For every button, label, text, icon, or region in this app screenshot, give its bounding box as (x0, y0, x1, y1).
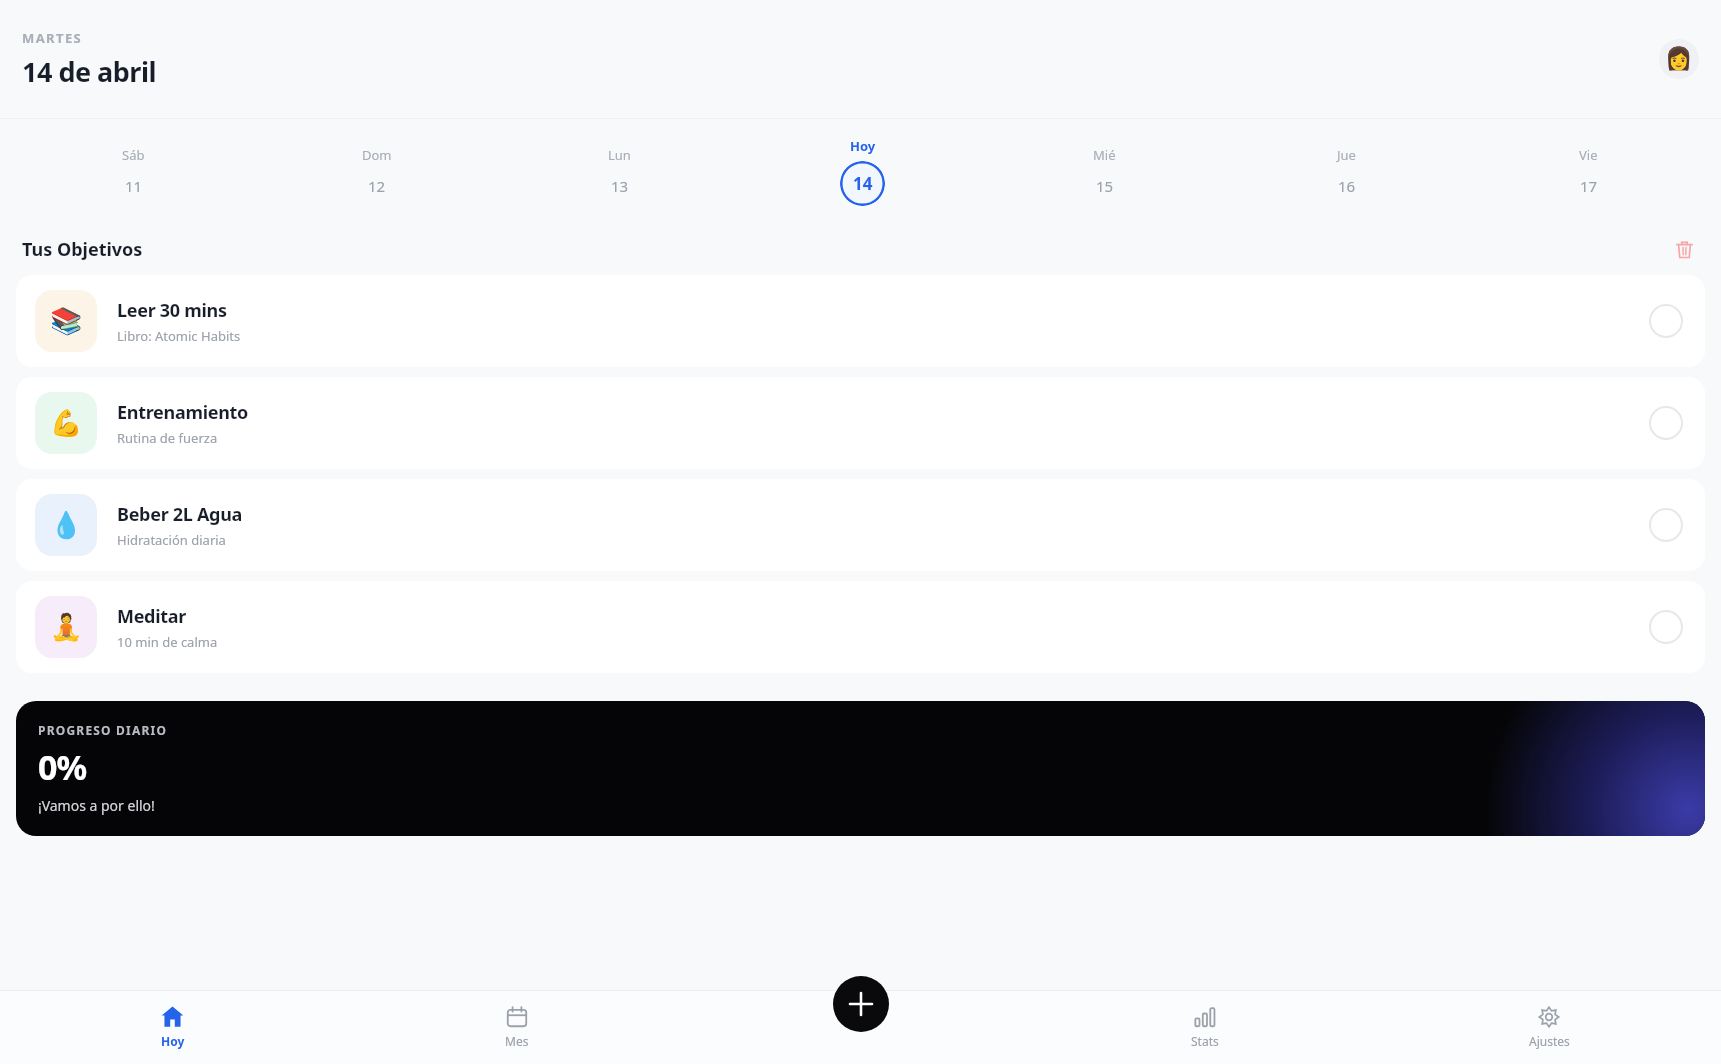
staticText: 💪 (50, 408, 83, 438)
staticText: 10 min de calma (117, 633, 218, 651)
button[interactable]: Hoy (0, 990, 345, 1064)
staticText: Ajustes (1529, 1033, 1570, 1049)
staticText: Rutina de fuerza (117, 429, 218, 447)
staticText: Tus Objetivos (22, 237, 143, 262)
button[interactable]: Stats (1033, 990, 1377, 1064)
staticText: Meditar (117, 604, 187, 629)
staticText: Leer 30 mins (117, 298, 227, 323)
staticText: PROGRESO DIARIO (38, 722, 168, 738)
staticText: 15 (1096, 176, 1114, 196)
staticText: 🧘 (50, 612, 83, 642)
staticText: Entrenamiento (117, 400, 249, 425)
button[interactable]: Ajustes (1377, 990, 1721, 1064)
button[interactable]: 💧 (16, 479, 1705, 571)
staticText: 16 (1338, 176, 1356, 196)
button[interactable]: Mié (983, 119, 1225, 223)
staticText: ¡Vamos a por ello! (38, 796, 155, 815)
staticText: Hoy (850, 137, 876, 155)
staticText: 14 de abril (22, 53, 157, 90)
staticText: Dom (362, 146, 392, 164)
button[interactable]: Lun (498, 119, 741, 223)
staticText: 0% (38, 744, 87, 790)
button[interactable]: Marcar Beber 2L Agua (1646, 505, 1686, 545)
staticText: 👩 (1665, 46, 1693, 72)
button[interactable]: Marcar Leer 30 mins (1646, 301, 1686, 341)
button[interactable]: PROGRESO DIARIO (16, 701, 1705, 836)
staticText: Hoy (161, 1033, 185, 1049)
button[interactable]: Añadir hábito (833, 976, 889, 1032)
staticText: Sáb (122, 146, 145, 164)
button[interactable]: Vie (1467, 119, 1709, 223)
button[interactable]: 📚 (16, 275, 1705, 367)
staticText: Stats (1191, 1033, 1219, 1049)
staticText: 📚 (50, 306, 83, 336)
button[interactable]: Perfil (1659, 39, 1699, 79)
button[interactable]: 🧘 (16, 581, 1705, 673)
button[interactable]: Marcar Meditar (1646, 607, 1686, 647)
staticText: Mes (505, 1033, 529, 1049)
staticText: 12 (368, 176, 386, 196)
staticText: 11 (125, 176, 143, 196)
button[interactable]: Dom (255, 119, 498, 223)
staticText: Vie (1579, 146, 1598, 164)
staticText: Hidratación diaria (117, 531, 226, 549)
staticText: 14 (853, 172, 873, 195)
button[interactable]: Mes (345, 990, 689, 1064)
staticText: 💧 (50, 510, 83, 540)
button[interactable]: Hoy (741, 119, 983, 223)
staticText: MARTES (22, 29, 83, 47)
staticText: Beber 2L Agua (117, 502, 243, 527)
staticText: Libro: Atomic Habits (117, 327, 241, 345)
button[interactable]: Jue (1225, 119, 1467, 223)
button[interactable]: Borrar (1669, 234, 1699, 264)
button[interactable]: 💪 (16, 377, 1705, 469)
button[interactable]: Sáb (12, 119, 255, 223)
staticText: Mié (1093, 146, 1116, 164)
staticText: Jue (1337, 146, 1356, 164)
staticText: 17 (1580, 176, 1598, 196)
staticText: 13 (611, 176, 629, 196)
staticText: Lun (608, 146, 631, 164)
button[interactable]: Marcar Entrenamiento (1646, 403, 1686, 443)
